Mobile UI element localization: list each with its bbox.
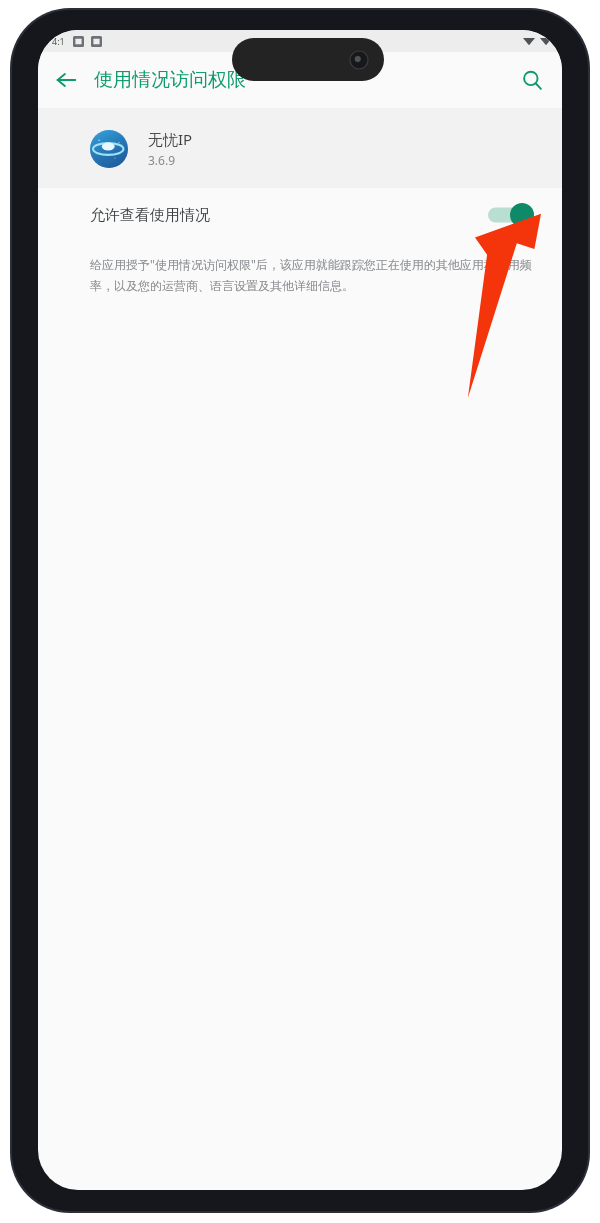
staticText: 给应用授予"使用情况访问权限"后，该应用就能跟踪您正在使用的其他应用和使用频率，… xyxy=(90,256,546,293)
button[interactable]: 允许查看使用情况 开关 xyxy=(488,203,534,227)
staticText: 4:1 xyxy=(52,35,65,47)
staticText: 无忧IP xyxy=(148,129,193,149)
staticText: 使用情况访问权限 xyxy=(94,68,246,92)
button[interactable]: 允许查看使用情况 xyxy=(38,188,562,242)
button[interactable]: Search xyxy=(510,58,554,102)
button[interactable]: Back xyxy=(44,58,88,102)
staticText: 允许查看使用情况 xyxy=(90,206,488,225)
staticText: 3.6.9 xyxy=(148,152,176,168)
